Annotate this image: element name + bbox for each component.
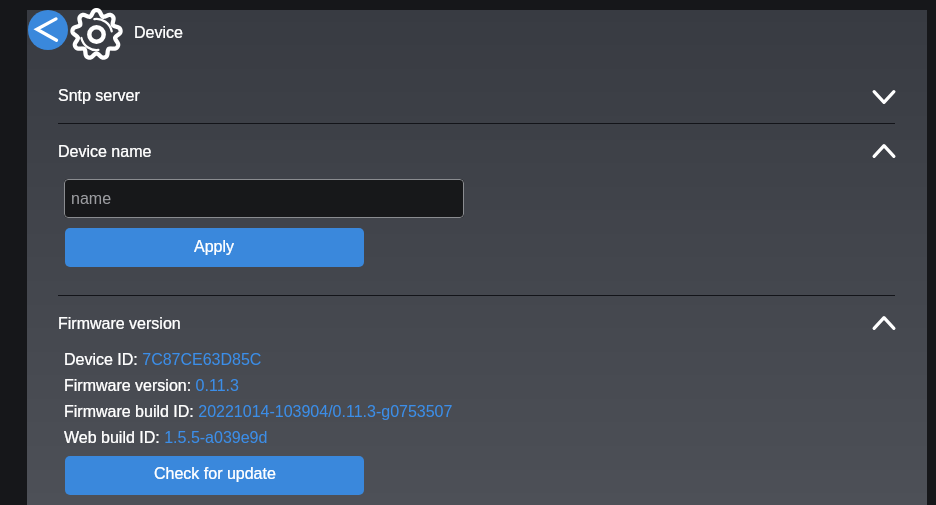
button[interactable]: Back — [28, 10, 68, 50]
button[interactable]: Firmware version — [58, 305, 894, 343]
button[interactable]: Apply — [65, 228, 364, 267]
button[interactable]: Check for update — [65, 456, 364, 495]
staticText: Sntp server — [58, 87, 140, 105]
staticText: Check for update — [154, 465, 276, 483]
button[interactable]: Device name — [58, 133, 894, 171]
staticText: Apply — [194, 238, 235, 256]
staticText: Firmware version: 0.11.3 — [64, 377, 239, 395]
staticText: Device ID: 7C87CE63D85C — [64, 351, 262, 369]
staticText: Device — [134, 24, 183, 42]
staticText: Web build ID: 1.5.5-a039e9d — [64, 429, 268, 447]
button[interactable]: name — [64, 179, 464, 218]
button[interactable]: Settings — [68, 6, 125, 63]
button[interactable]: Sntp server — [58, 77, 894, 115]
staticText: Firmware version — [58, 315, 181, 333]
staticText: name — [71, 190, 112, 208]
staticText: Device name — [58, 143, 152, 161]
staticText: Firmware build ID: 20221014-103904/0.11.… — [64, 403, 453, 421]
